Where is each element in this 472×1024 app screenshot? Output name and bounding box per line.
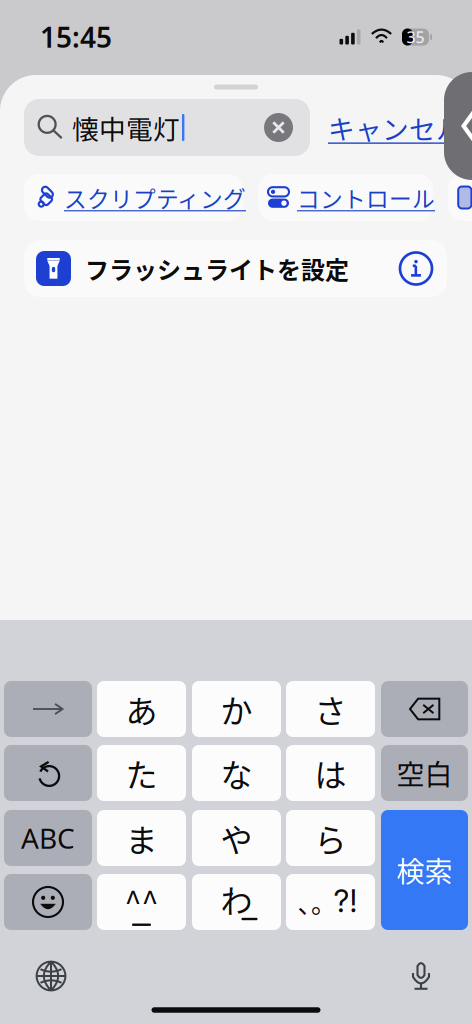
staticText: 検索 [396,850,452,890]
staticText: ?! [333,882,357,919]
staticText: 15:45 [40,18,112,56]
button[interactable]: さ [286,681,375,737]
staticText: た [125,750,157,796]
staticText: 。 [311,884,336,920]
staticText: や [220,815,252,861]
staticText: 空白 [396,753,452,793]
staticText: 懐中電灯 [72,108,180,147]
staticText: 、 [297,884,322,920]
button[interactable]: スクリプティング [24,174,243,221]
staticText: ま [125,815,157,861]
button[interactable]: あ [97,681,186,737]
staticText: は [314,750,346,796]
staticText: ^^ [124,878,158,922]
staticText: ら [314,815,346,861]
button[interactable] [4,745,92,801]
button[interactable]: た [97,745,186,801]
button[interactable]: ら [286,810,375,866]
button[interactable] [4,681,92,737]
staticText: わ [220,876,252,922]
staticText: コントロール [297,181,435,214]
button[interactable]: 検索 [381,810,468,930]
staticText: か [220,686,252,732]
staticText: ABC [21,819,75,857]
button[interactable]: 、 [286,874,375,930]
button[interactable] [4,874,92,930]
staticText: あ [125,686,157,732]
button[interactable]: や [192,810,281,866]
staticText: スクリプティング [64,181,246,214]
staticText: な [220,750,252,796]
button[interactable]: ^^ [97,874,186,930]
button[interactable]: ABC [4,810,92,866]
button[interactable]: コントロール [258,174,433,221]
button[interactable]: キャンセル [328,99,463,156]
button[interactable]: デ [448,174,472,221]
button[interactable]: Next keyboard [27,952,75,1000]
button[interactable]: フラッシュライトを設定 [24,240,447,297]
button[interactable]: Back to previous app [444,72,472,180]
button[interactable] [381,681,468,737]
button[interactable]: 空白 [381,745,468,801]
button[interactable]: は [286,745,375,801]
button[interactable]: Dictation [397,951,445,999]
button[interactable]: な [192,745,281,801]
staticText: キャンセル [328,108,463,147]
staticText: さ [314,686,346,732]
button[interactable]: わ [192,874,281,930]
button[interactable]: か [192,681,281,737]
button[interactable]: ま [97,810,186,866]
staticText: 35 [406,26,424,48]
staticText: フラッシュライトを設定 [85,251,349,286]
